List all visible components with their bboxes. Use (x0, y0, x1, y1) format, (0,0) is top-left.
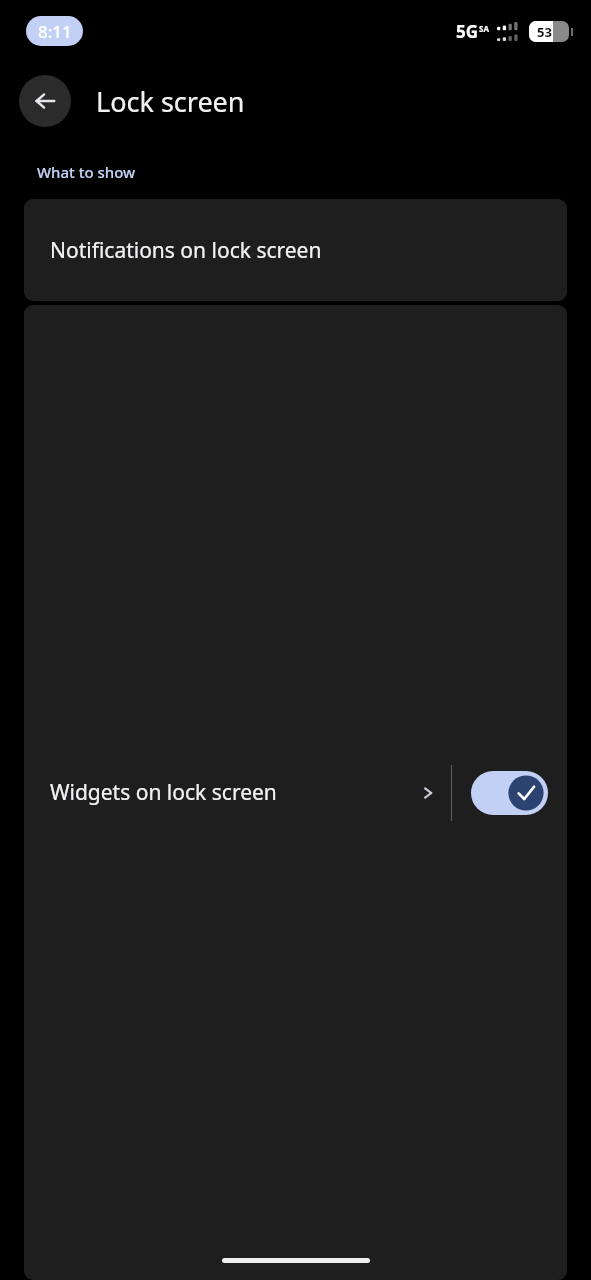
staticText: 53 (537, 23, 552, 41)
staticText: SA (479, 23, 489, 34)
button[interactable]: On (471, 771, 548, 815)
button[interactable]: Widgets on lock screen (24, 305, 451, 1280)
button[interactable]: Back (19, 75, 71, 127)
staticText: 5G (456, 20, 479, 43)
staticText: Lock screen (96, 83, 245, 120)
staticText: 8:11 (38, 20, 72, 43)
staticText: Widgets on lock screen (50, 778, 419, 807)
staticText: What to show (37, 162, 136, 182)
button[interactable]: Notifications on lock screen (24, 199, 567, 301)
button[interactable]: Widgets toggle (452, 305, 567, 1280)
staticText: Notifications on lock screen (50, 236, 322, 265)
